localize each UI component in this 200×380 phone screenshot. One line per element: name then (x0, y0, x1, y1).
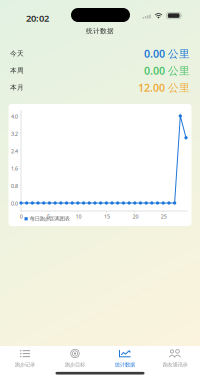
button[interactable]: 今天 (0, 45, 200, 62)
button[interactable]: 本周 (0, 62, 200, 79)
staticText: 本月 (10, 83, 24, 92)
staticText: 0.8 (11, 182, 18, 189)
staticText: 0.00 公里 (144, 63, 190, 78)
button[interactable]: 跑步目标 (50, 346, 100, 368)
staticText: 12.00 公里 (138, 80, 190, 95)
staticText: 0 (20, 213, 23, 220)
staticText: 跑步记录 (15, 361, 35, 368)
button[interactable]: 跑步记录 (0, 346, 50, 368)
button[interactable]: 统计数据 (100, 346, 150, 368)
staticText: 15 (104, 213, 110, 220)
staticText: 2.4 (11, 148, 18, 155)
staticText: 跑步目标 (65, 361, 85, 368)
staticText: 5 (47, 213, 50, 220)
staticText: 1.6 (11, 165, 18, 172)
staticText: 跑友通讯录 (162, 361, 187, 368)
button[interactable]: 本月 (0, 79, 200, 96)
staticText: 0.00 公里 (144, 46, 190, 61)
button[interactable]: 跑友通讯录 (150, 346, 200, 368)
staticText: 20:02 (26, 12, 49, 24)
staticText: 0.0 (11, 200, 18, 207)
staticText: 统计数据 (115, 361, 135, 368)
staticText: 本周 (10, 66, 24, 75)
staticText: 20 (132, 213, 138, 220)
staticText: 每日跑步距离图表 (30, 215, 70, 222)
staticText: 10 (75, 213, 81, 220)
staticText: 统计数据 (86, 27, 114, 35)
staticText: 25 (161, 213, 167, 220)
staticText: 3.2 (11, 130, 18, 137)
staticText: 4.0 (11, 113, 18, 120)
staticText: 今天 (10, 49, 24, 58)
